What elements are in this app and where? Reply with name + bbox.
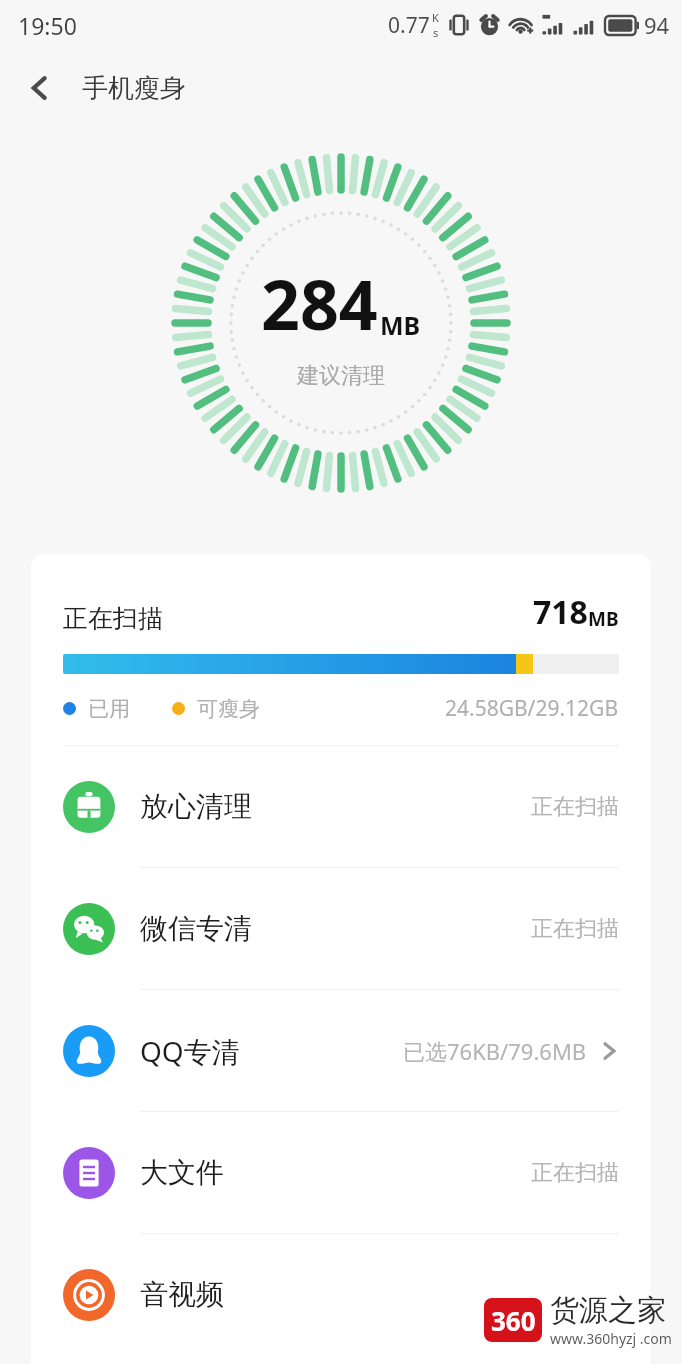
staticText: 已选76KB/79.6MB xyxy=(403,1036,587,1066)
button[interactable]: 微信专清 xyxy=(31,868,651,989)
button[interactable]: Back xyxy=(12,60,68,116)
button[interactable]: QQ专清 xyxy=(31,990,651,1111)
staticText: 正在扫描 xyxy=(63,603,163,634)
staticText: 正在扫描 xyxy=(531,915,619,943)
staticText: 24.58GB/29.12GB xyxy=(445,694,619,723)
staticText: 大文件 xyxy=(140,1155,224,1190)
staticText: 360 xyxy=(491,1303,536,1338)
button[interactable]: 大文件 xyxy=(31,1112,651,1233)
staticText: 正在扫描 xyxy=(531,793,619,821)
staticText: 放心清理 xyxy=(140,789,252,824)
staticText: K xyxy=(432,10,439,25)
staticText: MB xyxy=(588,606,619,632)
staticText: 0.77 xyxy=(388,11,430,40)
staticText: 284 xyxy=(261,257,378,350)
staticText: QQ专清 xyxy=(140,1032,240,1070)
staticText: 货源之家 xyxy=(550,1292,666,1329)
staticText: 718 xyxy=(533,590,588,634)
staticText: 94 xyxy=(644,10,670,40)
staticText: www.360hyzj .com xyxy=(550,1329,672,1348)
staticText: 手机瘦身 xyxy=(82,72,186,105)
staticText: 音视频 xyxy=(140,1277,224,1312)
staticText: 已用 xyxy=(88,696,130,722)
staticText: 建议清理 xyxy=(297,362,385,390)
staticText: 可瘦身 xyxy=(197,696,260,722)
button[interactable]: 音视频 xyxy=(31,1234,651,1355)
staticText: 19:50 xyxy=(18,10,77,41)
staticText: MB xyxy=(380,308,421,342)
staticText: s xyxy=(433,25,439,40)
button[interactable]: 放心清理 xyxy=(31,746,651,867)
staticText: 正在扫描 xyxy=(531,1159,619,1187)
staticText: 微信专清 xyxy=(140,911,252,946)
